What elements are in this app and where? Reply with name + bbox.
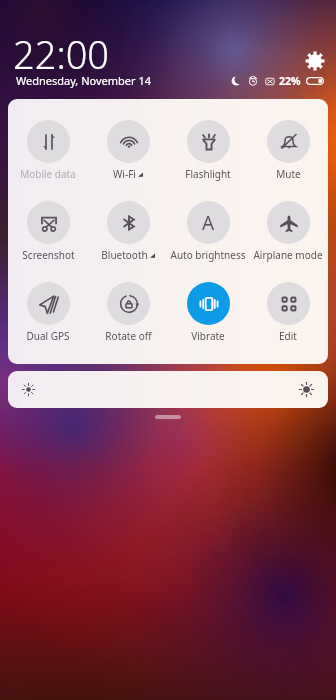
staticText: Mobile data [20,167,76,181]
staticText: Mute [276,167,301,181]
button[interactable]: Wi-Fi [88,99,168,180]
button[interactable]: Bluetooth [88,180,168,261]
staticText: Dual GPS [26,329,70,343]
staticText: Vibrate [191,329,225,343]
button[interactable]: Mobile data [8,99,88,180]
staticText: Wi-Fi [113,167,136,181]
staticText: 22% [279,74,301,88]
staticText: Edit [279,329,297,343]
staticText: Wednesday, November 14 [16,73,151,88]
button[interactable]: Airplane mode [248,180,328,261]
staticText: Bluetooth [101,248,148,262]
button[interactable]: Rotate off [88,261,168,342]
button[interactable]: Dual GPS [8,261,88,342]
button[interactable]: Screenshot [8,180,88,261]
button[interactable]: Vibrate [168,261,248,342]
button[interactable]: Edit [248,261,328,342]
button[interactable]: A [168,180,248,261]
staticText: 22:00 [13,28,110,80]
button[interactable]: Flashlight [168,99,248,180]
staticText: Airplane mode [253,248,323,262]
staticText: Screenshot [22,248,75,262]
staticText: Flashlight [185,167,231,181]
button[interactable]: Brightness [8,371,328,408]
staticText: Auto brightness [170,248,246,262]
staticText: A [202,210,215,236]
button[interactable]: Settings [303,49,327,73]
button[interactable]: Mute [248,99,328,180]
staticText: Rotate off [105,329,152,343]
